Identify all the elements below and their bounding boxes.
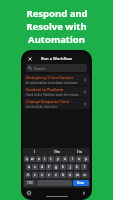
staticText: k [76, 165, 78, 169]
staticText: The [54, 149, 60, 154]
staticText: Send to the Platform team for review. [26, 93, 79, 97]
button[interactable]: b [60, 172, 66, 178]
staticText: Run a Workflow [41, 56, 72, 61]
button[interactable]: Close [26, 55, 33, 62]
button[interactable]: e [36, 156, 41, 162]
staticText: o [78, 157, 80, 161]
button[interactable]: The [46, 148, 68, 155]
staticText: p [85, 157, 87, 161]
button[interactable]: x [39, 172, 45, 178]
button[interactable]: f [46, 164, 52, 170]
staticText: a [28, 165, 30, 169]
button[interactable]: m [74, 172, 80, 178]
button[interactable]: Done [73, 180, 89, 186]
staticText: Change Response Time [26, 99, 69, 104]
staticText: b [62, 173, 64, 177]
button[interactable]: t [48, 156, 54, 162]
staticText: e [38, 157, 40, 161]
button[interactable]: k [74, 164, 80, 170]
button[interactable]: Change Response Time [23, 98, 90, 109]
button[interactable]: g [53, 164, 59, 170]
button[interactable]: v [53, 172, 59, 178]
staticText: r [44, 157, 46, 161]
staticText: x [41, 173, 43, 177]
button[interactable]: n [67, 172, 73, 178]
staticText: v [55, 173, 57, 177]
staticText: j [70, 165, 71, 169]
button[interactable]: l [81, 164, 87, 170]
staticText: d [41, 165, 43, 169]
button[interactable]: y [55, 156, 61, 162]
button[interactable]: h [60, 164, 66, 170]
staticText: Done [77, 181, 85, 185]
staticText: m [76, 173, 79, 177]
staticText: w [31, 157, 34, 161]
staticText: I'm [77, 149, 82, 154]
staticText: s [34, 165, 36, 169]
staticText: n [69, 173, 71, 177]
staticText: t [50, 157, 52, 161]
button[interactable]: j [67, 164, 73, 170]
staticText: g [55, 165, 57, 169]
staticText: z [34, 173, 36, 177]
button[interactable]: Emoji [26, 190, 32, 196]
button[interactable]: o [76, 156, 82, 162]
button[interactable]: Emergency Crisis Contact [23, 74, 90, 85]
staticText: u [64, 157, 66, 161]
staticText: ?123 [27, 181, 33, 185]
staticText: f [48, 165, 50, 169]
button[interactable]: c [46, 172, 52, 178]
staticText: q [26, 157, 28, 161]
button[interactable]: a [26, 164, 31, 170]
button[interactable]: ?123 [24, 180, 36, 186]
staticText: y [57, 157, 59, 161]
staticText: A conversation to escalate to human. [26, 81, 79, 85]
staticText: Respond and [26, 7, 88, 20]
button[interactable]: Backspace [81, 172, 89, 178]
staticText: Emergency Crisis Contact [26, 75, 73, 80]
button[interactable]: i [69, 156, 75, 162]
staticText: Set the SLA / due time. [26, 105, 58, 109]
button[interactable]: Shift [24, 172, 31, 178]
staticText: Automation [28, 33, 85, 46]
staticText: i [72, 157, 73, 161]
button[interactable]: u [62, 156, 68, 162]
button[interactable]: q [24, 156, 29, 162]
button[interactable]: s [32, 164, 38, 170]
staticText: l [84, 165, 85, 169]
button[interactable]: I [23, 148, 46, 155]
button[interactable]: d [39, 164, 45, 170]
staticText: c [48, 173, 50, 177]
button[interactable]: I'm [68, 148, 90, 155]
button[interactable]: r [42, 156, 47, 162]
button[interactable]: w [30, 156, 35, 162]
staticText: Resolve with [26, 20, 87, 33]
button[interactable]: z [32, 172, 38, 178]
button[interactable]: p [83, 156, 89, 162]
staticText: h [62, 165, 64, 169]
button[interactable]: Voice input [81, 190, 87, 196]
staticText: Escalate to Platform [26, 87, 64, 92]
staticText: I [34, 149, 36, 154]
button[interactable]: Escalate to Platform [23, 86, 90, 97]
button[interactable]: Search [26, 64, 87, 72]
staticText: Search [34, 66, 46, 71]
